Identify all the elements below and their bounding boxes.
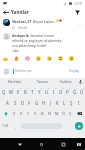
- staticText: X: [20, 111, 23, 116]
- staticText: çalış: [12, 48, 19, 52]
- staticText: ?123: [2, 124, 9, 128]
- staticText: 3: [20, 87, 22, 90]
- staticText: U: [45, 89, 49, 95]
- button[interactable]: X: [18, 108, 25, 119]
- staticText: I: [78, 100, 80, 106]
- button[interactable]: Emoji: [3, 55, 14, 61]
- button[interactable]: Change keyboard: [73, 138, 85, 150]
- staticText: 2: [83, 87, 85, 90]
- button[interactable]: N: [46, 108, 53, 119]
- staticText: Ç: [69, 111, 72, 116]
- button[interactable]: U: [43, 86, 50, 97]
- staticText: 5: [34, 87, 36, 90]
- button[interactable]: L: [61, 97, 68, 108]
- button[interactable]: B: [39, 108, 46, 119]
- button[interactable]: D: [19, 97, 26, 108]
- staticText: Ö: [62, 111, 66, 116]
- staticText: O: [59, 89, 63, 95]
- button[interactable]: K: [54, 97, 61, 108]
- button[interactable]: H: [40, 97, 47, 108]
- button[interactable]: Send: [72, 119, 85, 133]
- button[interactable]: Kullanıcı: [56, 78, 76, 86]
- staticText: 1: [76, 87, 78, 90]
- staticText: 2s: [12, 26, 16, 30]
- button[interactable]: Emoji: [47, 55, 58, 61]
- button[interactable]: Ğ: [71, 86, 78, 97]
- button[interactable]: I: [50, 86, 57, 97]
- button[interactable]: O: [57, 86, 64, 97]
- button[interactable]: Back: [0, 7, 11, 17]
- button[interactable]: J: [47, 97, 54, 108]
- staticText: P: [66, 89, 69, 95]
- button[interactable]: I: [75, 97, 82, 108]
- staticText: 0: [69, 87, 71, 90]
- staticText: Ş: [70, 100, 73, 106]
- button[interactable]: Recent apps: [57, 138, 69, 150]
- button[interactable]: ,: [11, 119, 20, 133]
- button[interactable]: T: [29, 86, 36, 97]
- staticText: Kullanıcı: [60, 80, 73, 84]
- button[interactable]: Tamam: [29, 78, 56, 86]
- staticText: F: [28, 100, 31, 106]
- button[interactable]: Emoji: [25, 55, 36, 61]
- button[interactable]: M: [53, 108, 60, 119]
- button[interactable]: S: [11, 97, 19, 108]
- button[interactable]: Ç: [67, 108, 74, 119]
- button[interactable]: A: [3, 97, 11, 108]
- button[interactable]: Backspace: [74, 108, 85, 119]
- button[interactable]: ?123: [0, 119, 11, 133]
- staticText: 4: [27, 87, 29, 90]
- button[interactable]: Emoji: [14, 55, 25, 61]
- staticText: B: [41, 111, 44, 116]
- button[interactable]: C: [25, 108, 32, 119]
- staticText: etkinlik ve paylaşım akışlarında,: [12, 38, 63, 43]
- staticText: Y: [38, 89, 41, 95]
- button[interactable]: Voice input: [76, 78, 85, 86]
- button[interactable]: Emoji: [69, 55, 80, 61]
- staticText: M: [55, 111, 59, 116]
- staticText: 2: [13, 87, 15, 90]
- button[interactable]: F: [26, 97, 33, 108]
- staticText: I: [53, 89, 55, 95]
- button[interactable]: Back: [14, 138, 26, 150]
- staticText: A: [6, 100, 9, 106]
- button[interactable]: P: [64, 86, 71, 97]
- button[interactable]: Home: [35, 138, 47, 150]
- button[interactable]: Shift: [0, 108, 11, 119]
- staticText: Yanıtlar: [11, 9, 29, 15]
- staticText: Yanıtla: [18, 26, 28, 30]
- button[interactable]: Paylaş: [67, 66, 82, 76]
- staticText: H: [42, 100, 46, 106]
- staticText: NeoLast_27: [12, 19, 32, 24]
- staticText: 10:19: [74, 2, 82, 6]
- staticText: Yanıtını yaz: [15, 69, 32, 73]
- button[interactable]: Y: [36, 86, 43, 97]
- button[interactable]: Emoji: [58, 55, 69, 61]
- button[interactable]: Ş: [68, 97, 75, 108]
- button[interactable]: Sort replies: [72, 7, 82, 17]
- staticText: D: [21, 100, 25, 106]
- button[interactable]: E: [15, 86, 22, 97]
- staticText: Ğ: [73, 89, 77, 95]
- button[interactable]: Ü: [78, 86, 85, 97]
- button[interactable]: Z: [11, 108, 18, 119]
- staticText: Merhaba: [8, 80, 22, 84]
- button[interactable]: Q: [0, 86, 8, 97]
- staticText: deskperik: [12, 33, 29, 38]
- staticText: G: [35, 100, 39, 106]
- staticText: K: [56, 100, 59, 106]
- staticText: T: [31, 89, 34, 95]
- button[interactable]: Ö: [60, 108, 67, 119]
- button[interactable]: Merhaba: [0, 78, 29, 86]
- button[interactable]: Emoji: [36, 55, 47, 61]
- staticText: S: [14, 100, 17, 106]
- staticText: C: [27, 111, 30, 116]
- button[interactable]: V: [32, 108, 39, 119]
- button[interactable]: W: [8, 86, 15, 97]
- staticText: son aktarılmayı hedef: [12, 43, 47, 48]
- button[interactable]: G: [33, 97, 40, 108]
- staticText: Z: [13, 111, 16, 116]
- button[interactable]: R: [22, 86, 29, 97]
